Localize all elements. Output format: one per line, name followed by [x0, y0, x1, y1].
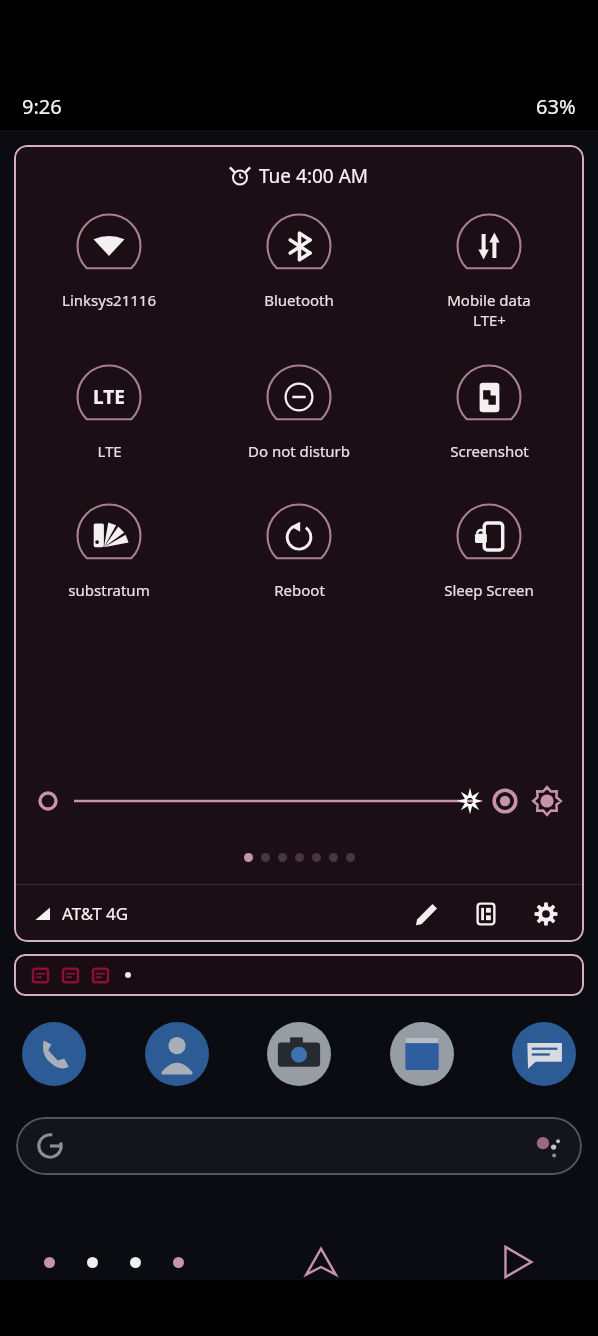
button[interactable]: Adaptive brightness	[492, 788, 518, 814]
button[interactable]: Reboot	[204, 501, 394, 600]
button[interactable]: Device info	[468, 896, 504, 932]
staticText: Sleep Screen	[444, 580, 534, 600]
button[interactable]: Camera	[267, 1022, 331, 1086]
staticText: LTE	[97, 441, 122, 461]
staticText: LTE+	[473, 310, 506, 330]
staticText: Reboot	[274, 580, 325, 600]
button[interactable]: Edit tiles	[408, 896, 444, 932]
staticText: 9:26	[22, 93, 62, 120]
button[interactable]: Linksys21116	[14, 211, 204, 310]
button[interactable]: Phone	[22, 1022, 86, 1086]
button[interactable]: Recents	[490, 1235, 544, 1289]
button[interactable]: Contacts	[145, 1022, 209, 1086]
button[interactable]: Minimum brightness	[36, 789, 60, 813]
staticText: Linksys21116	[62, 290, 156, 310]
staticText: 63%	[536, 93, 576, 120]
button[interactable]: Calendar	[390, 1022, 454, 1086]
button[interactable]: substratum	[14, 501, 204, 600]
button[interactable]: Bluetooth	[204, 211, 394, 310]
staticText: Screenshot	[450, 441, 529, 461]
staticText: Bluetooth	[264, 290, 334, 310]
button[interactable]: Do not disturb	[204, 362, 394, 461]
button[interactable]: Search	[16, 1117, 582, 1175]
staticText: Do not disturb	[248, 441, 350, 461]
button[interactable]: Mobile data	[394, 211, 584, 330]
button[interactable]: Notifications	[14, 954, 584, 996]
staticText: Tue 4:00 AM	[259, 163, 369, 189]
staticText: AT&T 4G	[62, 902, 129, 925]
button[interactable]: Brightness slider	[74, 787, 484, 815]
button[interactable]: Messages	[512, 1022, 576, 1086]
staticText: substratum	[68, 580, 150, 600]
button[interactable]: LTE	[14, 362, 204, 461]
button[interactable]: Carrier AT&T 4G	[34, 902, 129, 925]
staticText: Mobile data	[447, 290, 531, 310]
button[interactable]: Brightness settings	[532, 786, 562, 816]
button[interactable]: Settings	[528, 896, 564, 932]
staticText: LTE	[93, 384, 125, 410]
button[interactable]: Screenshot	[394, 362, 584, 461]
button[interactable]: Alarm Tue 4:00 AM	[14, 163, 584, 189]
button[interactable]: Sleep Screen	[394, 501, 584, 600]
button[interactable]: Home	[294, 1235, 348, 1289]
